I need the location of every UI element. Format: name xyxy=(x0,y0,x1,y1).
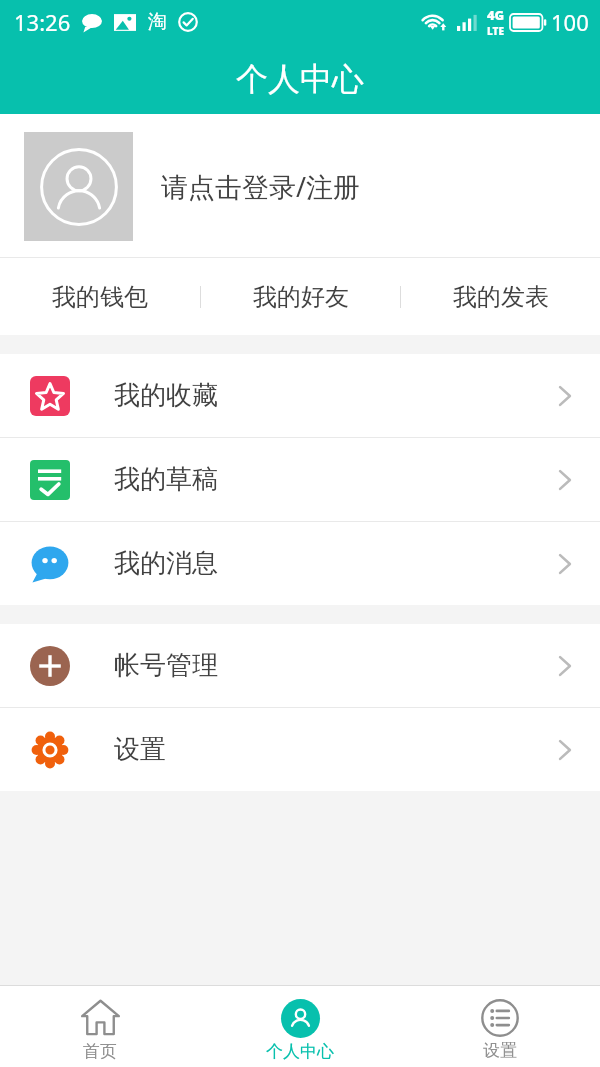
button[interactable]: 我的钱包 xyxy=(0,258,200,335)
button[interactable]: Home xyxy=(0,986,200,1067)
staticText: 我的消息 xyxy=(114,547,218,580)
button[interactable]: 我的发表 xyxy=(401,258,600,335)
staticText: 4G xyxy=(487,6,505,24)
staticText: 帐号管理 xyxy=(114,649,218,682)
staticText: 淘 xyxy=(148,10,167,34)
button[interactable]: 我的收藏 xyxy=(0,354,600,437)
button[interactable]: 请点击登录/注册 xyxy=(0,114,600,258)
staticText: 设置 xyxy=(114,733,166,766)
staticText: 请点击登录/注册 xyxy=(161,168,361,205)
button[interactable]: 我的消息 xyxy=(0,522,600,605)
staticText: 13:26 xyxy=(14,7,71,37)
staticText: 我的草稿 xyxy=(114,463,218,496)
button[interactable]: 我的好友 xyxy=(201,258,400,335)
staticText: 设置 xyxy=(483,1040,517,1061)
button[interactable]: 帐号管理 xyxy=(0,624,600,707)
staticText: 我的收藏 xyxy=(114,379,218,412)
staticText: 100 xyxy=(551,7,589,37)
staticText: 我的钱包 xyxy=(52,282,148,312)
staticText: 我的好友 xyxy=(253,282,349,312)
button[interactable]: Profile xyxy=(200,986,400,1067)
staticText: 个人中心 xyxy=(236,59,364,99)
staticText: 个人中心 xyxy=(266,1041,334,1062)
staticText: 我的发表 xyxy=(453,282,549,312)
button[interactable]: 我的草稿 xyxy=(0,438,600,521)
button[interactable]: 设置 xyxy=(0,708,600,791)
staticText: LTE xyxy=(487,24,505,38)
button[interactable]: Settings xyxy=(400,986,600,1067)
staticText: 首页 xyxy=(83,1041,117,1062)
